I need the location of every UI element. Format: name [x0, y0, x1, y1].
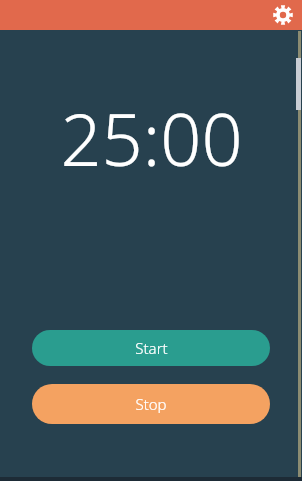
- button[interactable]: Settings: [270, 2, 296, 28]
- staticText: Start: [135, 338, 168, 358]
- staticText: Stop: [135, 394, 167, 414]
- staticText: 25:00: [60, 89, 243, 173]
- button[interactable]: Start: [32, 330, 270, 366]
- button[interactable]: Stop: [32, 384, 270, 424]
